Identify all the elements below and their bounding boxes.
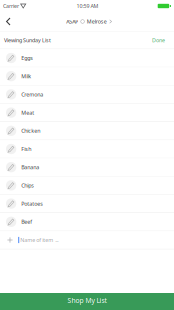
staticText: Banana: [21, 164, 39, 171]
staticText: Viewing Sunday List: [4, 37, 51, 44]
staticText: 10:59 AM: [76, 2, 98, 10]
staticText: Name of item ...: [20, 236, 58, 244]
button[interactable]: Name of item ...: [0, 231, 174, 249]
button[interactable]: Chicken: [0, 122, 174, 140]
staticText: ASAP: [66, 18, 78, 25]
staticText: Done: [152, 37, 165, 44]
button[interactable]: Meat: [0, 104, 174, 122]
staticText: Beef: [21, 218, 32, 225]
button[interactable]: Fish: [0, 140, 174, 158]
staticText: Potatoes: [21, 200, 43, 207]
button[interactable]: Done: [146, 32, 174, 49]
staticText: Chips: [21, 182, 34, 189]
button[interactable]: Potatoes: [0, 195, 174, 213]
button[interactable]: Banana: [0, 158, 174, 177]
staticText: Eggs: [21, 54, 33, 62]
button[interactable]: Beef: [0, 213, 174, 231]
button[interactable]: ASAP: [66, 12, 112, 30]
staticText: Chicken: [21, 127, 40, 134]
staticText: Melrose: [87, 18, 107, 25]
button[interactable]: Back: [0, 12, 17, 31]
staticText: Meat: [21, 109, 34, 116]
staticText: Fish: [21, 145, 31, 153]
button[interactable]: Eggs: [0, 49, 174, 67]
staticText: Milk: [21, 73, 31, 80]
button[interactable]: Shop My List: [0, 293, 174, 310]
button[interactable]: Cremona: [0, 86, 174, 104]
staticText: Cremona: [21, 91, 43, 98]
button[interactable]: Chips: [0, 177, 174, 195]
staticText: Carrier: [3, 2, 19, 10]
staticText: Shop My List: [67, 296, 106, 305]
button[interactable]: Milk: [0, 67, 174, 86]
